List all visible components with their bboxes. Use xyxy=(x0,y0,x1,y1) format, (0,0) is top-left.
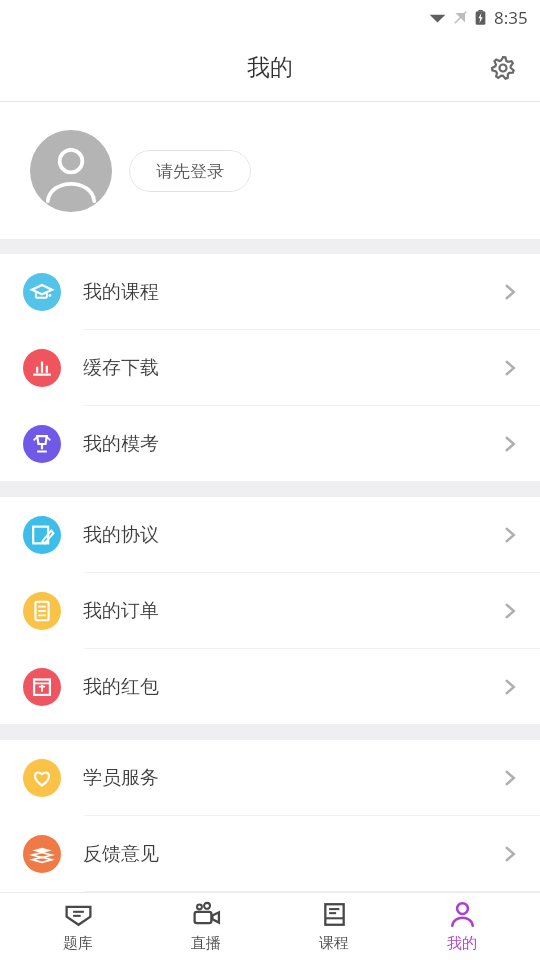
button[interactable]: 课程 xyxy=(284,893,384,960)
staticText: 缓存下载 xyxy=(83,356,159,380)
button[interactable]: 我的模考 xyxy=(0,406,540,481)
staticText: 8:35 xyxy=(494,6,528,29)
staticText: 我的 xyxy=(447,934,477,953)
staticText: 我的协议 xyxy=(83,523,159,547)
staticText: 直播 xyxy=(191,934,221,953)
button[interactable]: 反馈意见 xyxy=(0,816,540,891)
staticText: 我的 xyxy=(247,53,293,82)
staticText: 我的模考 xyxy=(83,432,159,456)
staticText: 我的红包 xyxy=(83,675,159,699)
button[interactable]: 我的订单 xyxy=(0,573,540,648)
staticText: 请先登录 xyxy=(156,161,224,182)
button[interactable]: 请先登录 xyxy=(129,150,251,192)
button[interactable]: 我的红包 xyxy=(0,649,540,724)
button[interactable]: Settings xyxy=(480,45,526,91)
button[interactable]: 我的协议 xyxy=(0,497,540,572)
staticText: 题库 xyxy=(63,934,93,953)
button[interactable]: Avatar xyxy=(30,130,112,212)
button[interactable]: 学员服务 xyxy=(0,740,540,815)
staticText: 我的课程 xyxy=(83,280,159,304)
button[interactable]: 我的课程 xyxy=(0,254,540,329)
staticText: 学员服务 xyxy=(83,766,159,790)
staticText: 反馈意见 xyxy=(83,842,159,866)
staticText: 我的订单 xyxy=(83,599,159,623)
staticText: 课程 xyxy=(319,934,349,953)
button[interactable]: 题库 xyxy=(28,893,128,960)
button[interactable]: 直播 xyxy=(156,893,256,960)
button[interactable]: 缓存下载 xyxy=(0,330,540,405)
button[interactable]: 我的 xyxy=(412,893,512,960)
